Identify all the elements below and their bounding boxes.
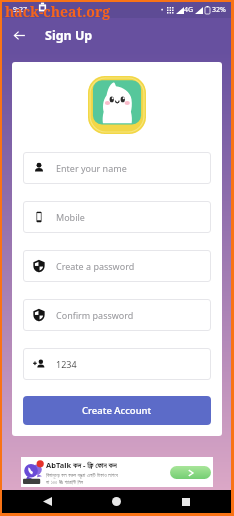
staticText: Mobile [56, 211, 85, 223]
staticText: Create a password [56, 260, 135, 272]
button[interactable]: Create a password [23, 250, 211, 282]
button[interactable]: Enter your name [23, 152, 211, 184]
button[interactable]: Home [105, 490, 128, 513]
button[interactable]: Confirm password [23, 299, 211, 331]
button[interactable]: Back [36, 490, 59, 513]
staticText: 1234 [56, 358, 77, 370]
staticText: • [161, 6, 167, 14]
staticText: 32% [212, 5, 226, 15]
staticText: Enter your name [56, 162, 127, 174]
staticText: hack-cheat.org [5, 2, 111, 21]
button[interactable]: Mobile [23, 201, 211, 233]
staticText: বিনামূল্যে কল করুন বন্ধুরা একটি টাকাও লা… [46, 471, 118, 478]
staticText: Confirm password [56, 309, 134, 321]
staticText: AbTalk কল - ফ্রি ফোন কল [46, 460, 117, 470]
button[interactable]: 1234 [23, 348, 211, 380]
staticText: Create Account [82, 404, 152, 417]
button[interactable]: Create Account [23, 396, 211, 425]
button[interactable]: AbTalk কল - ফ্রি ফোন কল [21, 457, 213, 487]
button[interactable]: Back [2, 18, 36, 52]
staticText: 4G [184, 5, 194, 15]
staticText: 9:27 [13, 5, 27, 15]
button[interactable]: Recents [174, 490, 197, 513]
staticText: Sign Up [45, 27, 93, 44]
staticText: না ১০০ % গ্যারান্টি নিন [46, 478, 84, 485]
button[interactable]: Install [170, 466, 211, 479]
